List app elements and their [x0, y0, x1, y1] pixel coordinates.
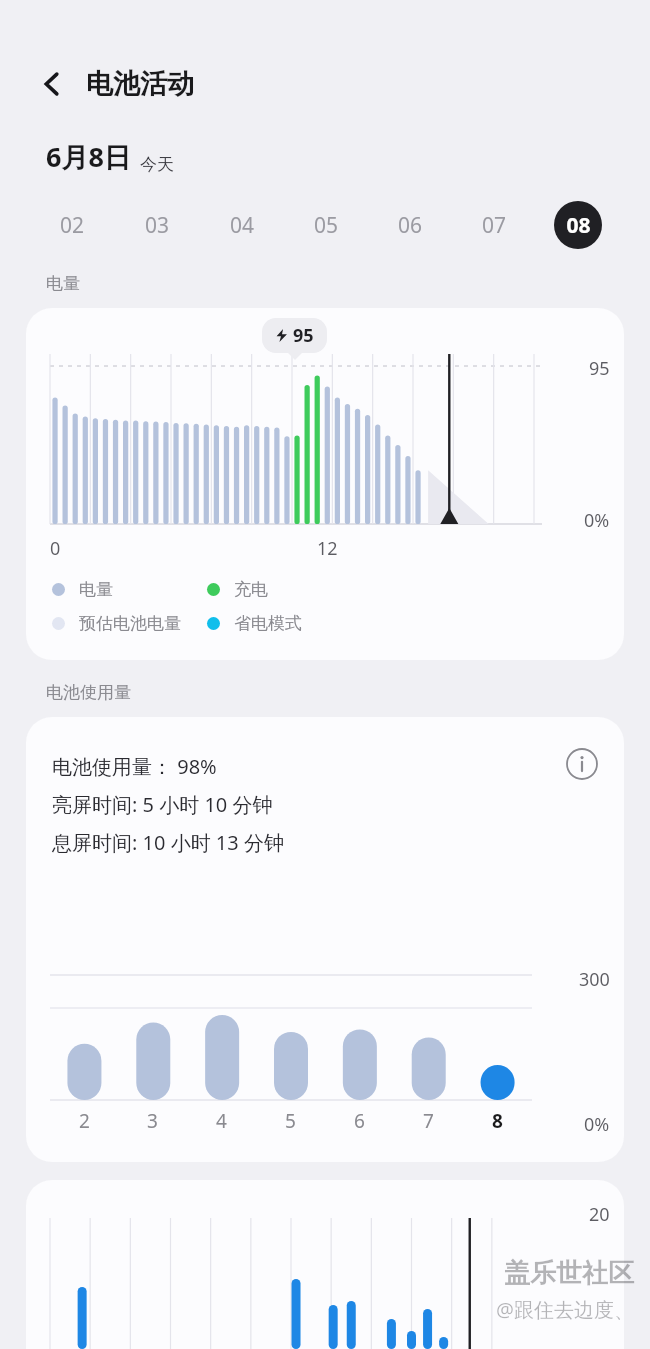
staticText: 亮屏时间: 5 小时 10 分钟 — [52, 791, 273, 818]
staticText: 300 — [579, 967, 610, 992]
staticText: 盖乐世社区 — [504, 1257, 634, 1290]
button[interactable]: 电池使用量： 98% — [26, 717, 624, 1162]
button[interactable]: 95 — [26, 308, 624, 660]
staticText: 电池使用量： 98% — [52, 753, 217, 780]
staticText: 08 — [566, 211, 591, 240]
staticText: 02 — [60, 211, 85, 240]
staticText: 电量 — [79, 579, 113, 600]
button[interactable]: 05 — [284, 197, 368, 253]
button[interactable]: Info — [562, 744, 602, 784]
staticText: 04 — [230, 211, 255, 240]
staticText: 今天 — [140, 154, 174, 175]
button[interactable]: Back — [30, 62, 74, 106]
button[interactable]: 03 — [115, 197, 200, 253]
staticText: 95 — [589, 356, 610, 381]
staticText: 8 — [492, 1108, 503, 1134]
staticText: 95 — [293, 323, 314, 348]
staticText: 2 — [79, 1108, 90, 1134]
button[interactable]: 02 — [30, 197, 115, 253]
staticText: 20 — [589, 1202, 610, 1227]
staticText: 电池使用量 — [46, 682, 131, 703]
staticText: 06 — [398, 211, 423, 240]
staticText: @跟住去边度、 — [496, 1296, 634, 1323]
button[interactable]: 06 — [368, 197, 452, 253]
staticText: 电量 — [46, 273, 80, 294]
staticText: 充电 — [234, 579, 268, 600]
button[interactable]: 20 — [26, 1180, 624, 1349]
staticText: 05 — [314, 211, 339, 240]
staticText: 省电模式 — [234, 613, 302, 634]
staticText: 03 — [145, 211, 170, 240]
staticText: 0% — [584, 508, 610, 533]
staticText: 3 — [147, 1108, 158, 1134]
staticText: 息屏时间: 10 小时 13 分钟 — [52, 829, 284, 856]
staticText: 电池活动 — [86, 67, 194, 101]
staticText: 6 — [354, 1108, 365, 1134]
staticText: 4 — [216, 1108, 227, 1134]
button[interactable]: 04 — [200, 197, 284, 253]
button[interactable]: 07 — [452, 197, 536, 253]
button[interactable]: 08 — [536, 197, 620, 253]
staticText: 07 — [482, 211, 507, 240]
staticText: 0 — [50, 536, 61, 561]
staticText: 预估电池电量 — [79, 613, 181, 634]
staticText: 12 — [317, 536, 338, 561]
staticText: 7 — [423, 1108, 434, 1134]
staticText: 6月8日 — [46, 138, 131, 175]
staticText: 5 — [285, 1108, 296, 1134]
staticText: 0% — [584, 1112, 610, 1137]
